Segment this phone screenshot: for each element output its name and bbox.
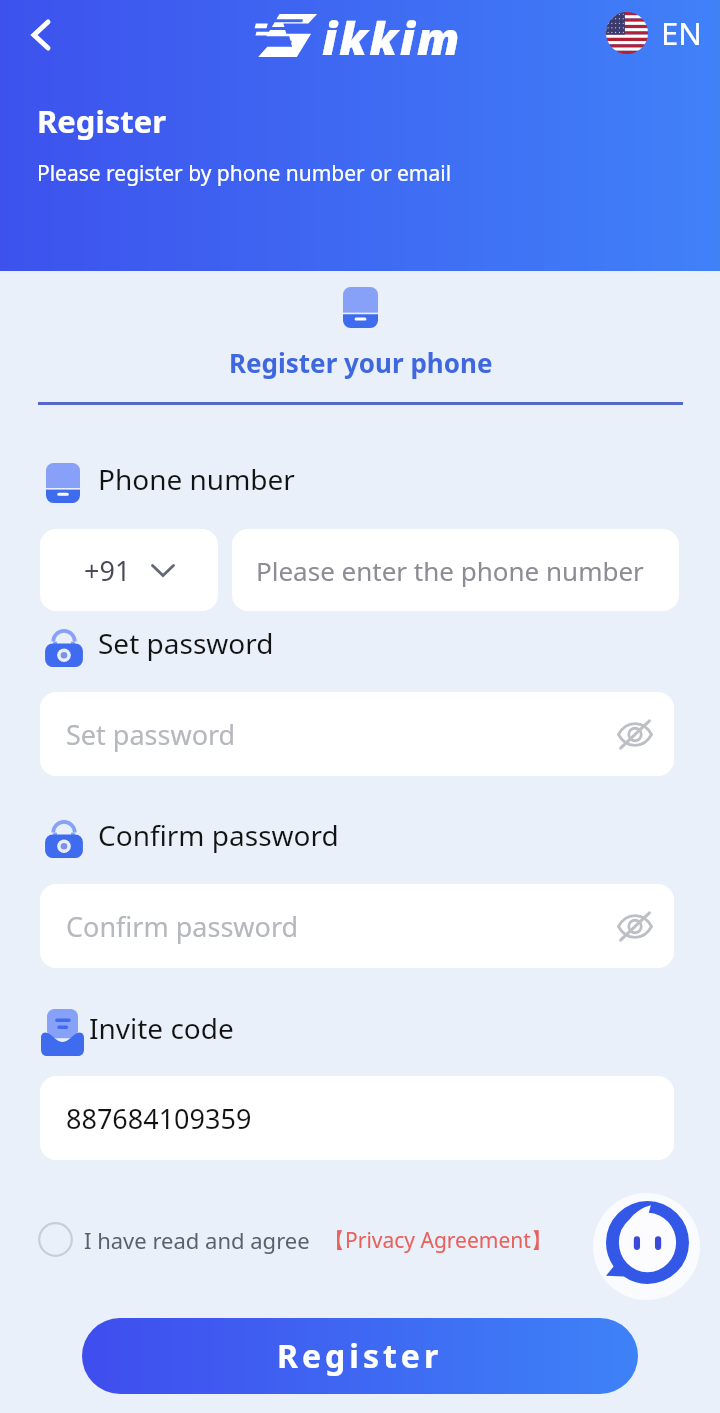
staticText: Register your phone <box>229 345 493 380</box>
button[interactable]: Register your phone <box>38 281 683 399</box>
staticText: Please enter the phone number <box>256 553 644 588</box>
staticText: EN <box>661 12 702 54</box>
button[interactable]: Please enter the phone number <box>232 529 679 611</box>
button[interactable]: Register <box>82 1318 638 1394</box>
button[interactable]: Confirm password <box>40 884 674 968</box>
staticText: Confirm password <box>66 908 299 945</box>
button[interactable]: Language: English <box>606 12 702 54</box>
button[interactable]: Toggle password visibility <box>609 900 661 952</box>
button[interactable]: 【Privacy Agreement】 <box>324 1226 552 1255</box>
staticText: Set password <box>66 716 236 753</box>
button[interactable]: Back <box>16 10 66 60</box>
staticText: Set password <box>98 624 274 662</box>
staticText: Confirm password <box>98 816 339 854</box>
button[interactable]: Agree to privacy agreement <box>36 1220 74 1258</box>
button[interactable]: Customer service <box>593 1193 700 1300</box>
staticText: I have read and agree <box>84 1225 310 1255</box>
button[interactable]: Set password <box>40 692 674 776</box>
staticText: Register <box>277 1334 443 1378</box>
staticText: Register <box>37 100 167 142</box>
staticText: +91 <box>84 552 131 589</box>
button[interactable]: 887684109359 <box>40 1076 674 1160</box>
staticText: Please register by phone number or email <box>37 159 452 188</box>
staticText: ikkim <box>322 7 462 55</box>
button[interactable]: +91 <box>40 529 218 611</box>
staticText: 887684109359 <box>66 1100 252 1137</box>
button[interactable]: Toggle password visibility <box>609 708 661 760</box>
staticText: Phone number <box>98 460 295 498</box>
staticText: Invite code <box>89 1009 234 1047</box>
